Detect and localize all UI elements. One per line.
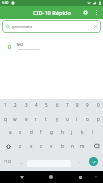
staticText: 9: [86, 102, 89, 108]
button[interactable]: 8: [72, 98, 82, 112]
button[interactable]: m: [77, 139, 87, 153]
staticText: p: [97, 116, 100, 122]
button[interactable]: p: [93, 112, 103, 126]
button[interactable]: j: [67, 125, 77, 139]
button[interactable]: r: [31, 112, 41, 126]
button[interactable]: d: [26, 125, 36, 139]
staticText: Hipertrofia da mama: [17, 47, 41, 50]
button[interactable]: a: [5, 125, 15, 139]
staticText: l: [92, 129, 94, 135]
button[interactable]: k: [77, 125, 87, 139]
button[interactable]: Comma: [16, 154, 27, 169]
button[interactable]: 7: [62, 98, 72, 112]
staticText: a: [9, 129, 12, 135]
button[interactable]: z: [15, 139, 25, 153]
staticText: x: [30, 143, 33, 149]
button[interactable]: 3: [21, 98, 31, 112]
button[interactable]: Search: [89, 157, 98, 166]
staticText: ?123: [4, 159, 12, 164]
staticText: 5: [45, 102, 48, 108]
staticText: 6: [56, 102, 59, 108]
staticText: 3: [25, 102, 28, 108]
button[interactable]: f: [36, 125, 46, 139]
staticText: N62: [17, 43, 23, 47]
button[interactable]: q: [0, 112, 10, 126]
button[interactable]: ginecomastia: [2, 20, 101, 33]
button[interactable]: g: [46, 125, 56, 139]
staticText: k: [81, 129, 84, 135]
staticText: c: [40, 143, 43, 149]
button[interactable]: 6: [52, 98, 62, 112]
staticText: CID-10 Rápido: [33, 9, 71, 17]
staticText: s: [19, 129, 22, 135]
staticText: 8: [76, 102, 79, 108]
button[interactable]: h: [57, 125, 67, 139]
button[interactable]: w: [10, 112, 20, 126]
staticText: h: [61, 129, 64, 135]
staticText: n: [71, 143, 74, 149]
staticText: 7: [66, 102, 69, 108]
staticText: ginecomastia: [12, 25, 33, 29]
staticText: e: [25, 116, 28, 122]
staticText: w: [13, 116, 17, 122]
staticText: g: [50, 129, 53, 135]
button[interactable]: ?123: [0, 154, 16, 169]
button[interactable]: 5: [41, 98, 51, 112]
button[interactable]: u: [62, 112, 72, 126]
button[interactable]: Back: [17, 172, 27, 182]
button[interactable]: b: [57, 139, 67, 153]
button[interactable]: Settings: [79, 6, 92, 19]
button[interactable]: n: [67, 139, 77, 153]
staticText: i: [76, 116, 78, 122]
staticText: v: [50, 143, 53, 149]
button[interactable]: v: [46, 139, 56, 153]
button[interactable]: i: [72, 112, 82, 126]
button[interactable]: 1: [0, 98, 10, 112]
staticText: d: [30, 129, 33, 135]
button[interactable]: 2: [10, 98, 20, 112]
button[interactable]: More options: [90, 6, 103, 19]
staticText: 4: [35, 102, 38, 108]
staticText: f: [40, 129, 42, 135]
staticText: 9:50: [2, 1, 9, 5]
button[interactable]: y: [52, 112, 62, 126]
button[interactable]: e: [21, 112, 31, 126]
button[interactable]: x: [26, 139, 36, 153]
button[interactable]: N62: [0, 38, 103, 54]
button[interactable]: Hide keyboard: [91, 172, 101, 182]
button[interactable]: 9: [82, 98, 92, 112]
staticText: b: [61, 143, 64, 149]
staticText: 2: [14, 102, 17, 108]
staticText: j: [71, 129, 73, 135]
staticText: q: [4, 116, 7, 122]
staticText: u: [66, 116, 69, 122]
button[interactable]: s: [15, 125, 25, 139]
staticText: y: [56, 116, 59, 122]
button[interactable]: 0: [93, 98, 103, 112]
staticText: m: [80, 143, 85, 149]
button[interactable]: Home: [46, 172, 56, 182]
staticText: 1: [4, 102, 7, 108]
button[interactable]: l: [88, 125, 98, 139]
button[interactable]: 4: [31, 98, 41, 112]
button[interactable]: Clear search: [91, 22, 100, 31]
staticText: z: [19, 143, 22, 149]
button[interactable]: t: [41, 112, 51, 126]
button[interactable]: Backspace: [88, 139, 103, 153]
button[interactable]: Shift: [0, 139, 16, 153]
button[interactable]: Recents: [75, 172, 85, 182]
staticText: r: [35, 116, 37, 122]
staticText: o: [86, 116, 89, 122]
staticText: t: [45, 116, 47, 122]
staticText: ,: [21, 159, 23, 164]
staticText: 0: [97, 102, 100, 108]
staticText: .: [79, 159, 81, 164]
button[interactable]: o: [82, 112, 92, 126]
button[interactable]: c: [36, 139, 46, 153]
